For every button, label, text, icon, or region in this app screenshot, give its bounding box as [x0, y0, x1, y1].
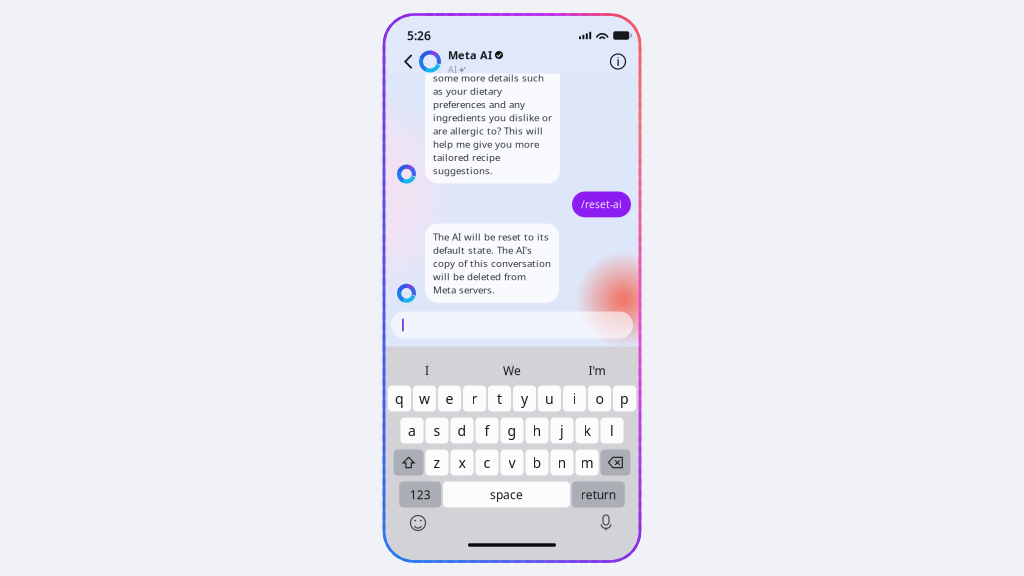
staticText: o — [595, 389, 603, 408]
staticText: q — [395, 389, 404, 408]
button[interactable]: t — [488, 385, 511, 411]
button[interactable]: I'm — [554, 359, 639, 381]
staticText: copy of this conversation — [433, 256, 551, 270]
staticText: are allergic to? This will — [433, 124, 543, 137]
staticText: h — [532, 421, 541, 440]
button[interactable]: i — [563, 385, 586, 411]
button[interactable]: p — [613, 385, 636, 411]
staticText: will be deleted from — [433, 270, 526, 283]
button[interactable]: a — [400, 417, 424, 443]
staticText: AI — [448, 63, 457, 75]
staticText: some more details such — [433, 71, 544, 84]
button[interactable]: Back — [398, 47, 419, 75]
staticText: I — [425, 362, 429, 379]
staticText: I'm — [588, 362, 605, 379]
staticText: d — [457, 421, 466, 440]
staticText: preferences and any — [433, 97, 525, 111]
button[interactable]: n — [550, 449, 574, 475]
button[interactable]: space — [443, 481, 570, 507]
staticText: Meta servers. — [433, 283, 495, 296]
button[interactable]: r — [463, 385, 486, 411]
staticText: r — [471, 389, 477, 408]
staticText: space — [490, 486, 523, 503]
button[interactable]: Dictation — [594, 511, 618, 535]
button[interactable]: j — [550, 417, 574, 443]
button[interactable]: return — [572, 481, 625, 507]
staticText: m — [580, 453, 593, 472]
staticText: We — [503, 362, 521, 379]
staticText: default state. The AI's — [433, 243, 532, 257]
staticText: i — [572, 389, 576, 408]
button[interactable]: w — [413, 385, 436, 411]
staticText: w — [419, 389, 430, 408]
staticText: c — [483, 453, 490, 472]
staticText: z — [433, 453, 440, 472]
staticText: x — [458, 453, 465, 472]
button[interactable]: l — [600, 417, 624, 443]
staticText: ingredients you dislike or — [433, 111, 552, 124]
button[interactable]: m — [575, 449, 599, 475]
button[interactable]: x — [450, 449, 474, 475]
button[interactable]: We — [469, 359, 554, 381]
staticText: tailored recipe — [433, 150, 500, 164]
button[interactable]: c — [475, 449, 499, 475]
staticText: n — [557, 453, 566, 472]
staticText: Meta AI — [448, 48, 492, 62]
button[interactable]: u — [538, 385, 561, 411]
staticText: 5:26 — [407, 27, 431, 44]
button[interactable]: o — [588, 385, 611, 411]
staticText: t — [497, 389, 502, 408]
button[interactable]: s — [425, 417, 449, 443]
button[interactable]: h — [525, 417, 549, 443]
button[interactable]: 123 — [399, 481, 441, 507]
staticText: as your dietary — [433, 84, 502, 98]
button[interactable]: z — [425, 449, 449, 475]
button[interactable]: Info — [610, 53, 626, 69]
staticText: The AI will be reset to its — [433, 230, 549, 243]
button[interactable]: y — [513, 385, 536, 411]
staticText: p — [620, 389, 629, 408]
staticText: s — [433, 421, 440, 440]
staticText: /reset-ai — [581, 197, 622, 211]
button[interactable]: v — [500, 449, 524, 475]
staticText: y — [521, 389, 528, 408]
button[interactable]: k — [575, 417, 599, 443]
staticText: i — [616, 53, 619, 70]
button[interactable]: Emoji keyboard — [406, 511, 430, 535]
staticText: return — [581, 486, 616, 503]
button[interactable]: d — [450, 417, 474, 443]
staticText: a — [408, 421, 416, 440]
staticText: b — [532, 453, 541, 472]
staticText: u — [545, 389, 554, 408]
button[interactable]: g — [500, 417, 524, 443]
staticText: help me give you more — [433, 137, 539, 151]
staticText: suggestions. — [433, 164, 493, 177]
staticText: j — [560, 421, 564, 440]
button[interactable]: I — [384, 359, 469, 381]
staticText: f — [484, 421, 489, 440]
staticText: l — [610, 421, 614, 440]
staticText: k — [583, 421, 590, 440]
button[interactable]: Delete — [600, 449, 630, 475]
button[interactable]: b — [525, 449, 549, 475]
staticText: v — [508, 453, 515, 472]
staticText: e — [445, 389, 453, 408]
button[interactable]: q — [388, 385, 411, 411]
staticText: 123 — [410, 486, 431, 503]
button[interactable]: f — [475, 417, 499, 443]
button[interactable]: Shift — [394, 449, 424, 475]
staticText: g — [507, 421, 516, 440]
button[interactable]: e — [438, 385, 461, 411]
